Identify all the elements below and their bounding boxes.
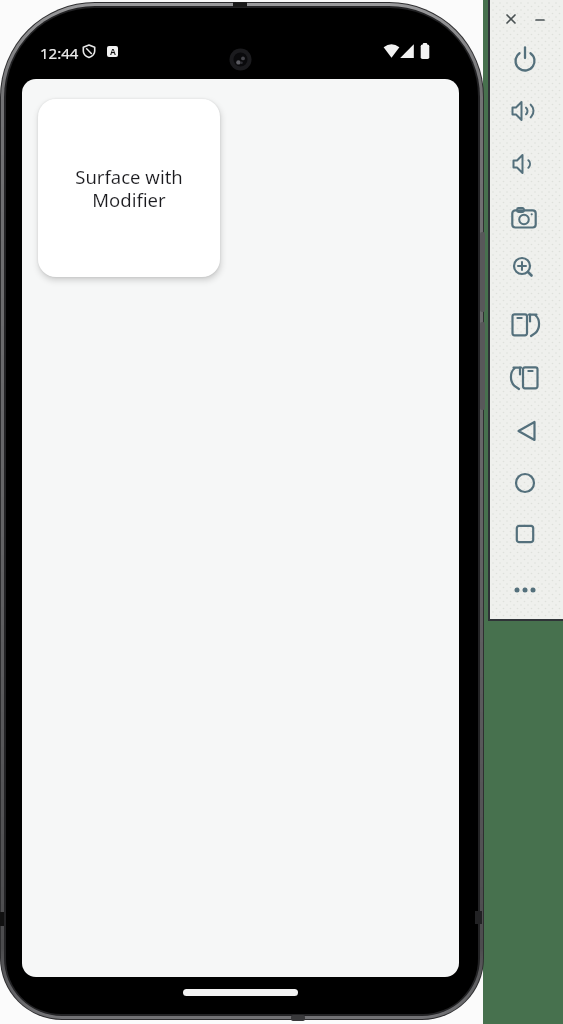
button[interactable]	[505, 305, 545, 345]
button[interactable]	[503, 144, 543, 184]
staticText: 12:44	[40, 43, 79, 63]
button[interactable]	[530, 9, 550, 29]
button[interactable]	[505, 40, 545, 80]
button[interactable]	[505, 358, 545, 398]
staticText: A	[110, 46, 116, 57]
button[interactable]	[504, 199, 544, 239]
button[interactable]	[505, 570, 545, 610]
button[interactable]	[505, 514, 545, 554]
button[interactable]	[506, 411, 546, 451]
staticText: Surface with Modifier	[75, 164, 183, 212]
button[interactable]	[505, 463, 545, 503]
button[interactable]	[501, 9, 521, 29]
button[interactable]	[504, 91, 544, 131]
button[interactable]	[503, 247, 543, 287]
button[interactable]: Surface with Modifier	[38, 99, 220, 277]
